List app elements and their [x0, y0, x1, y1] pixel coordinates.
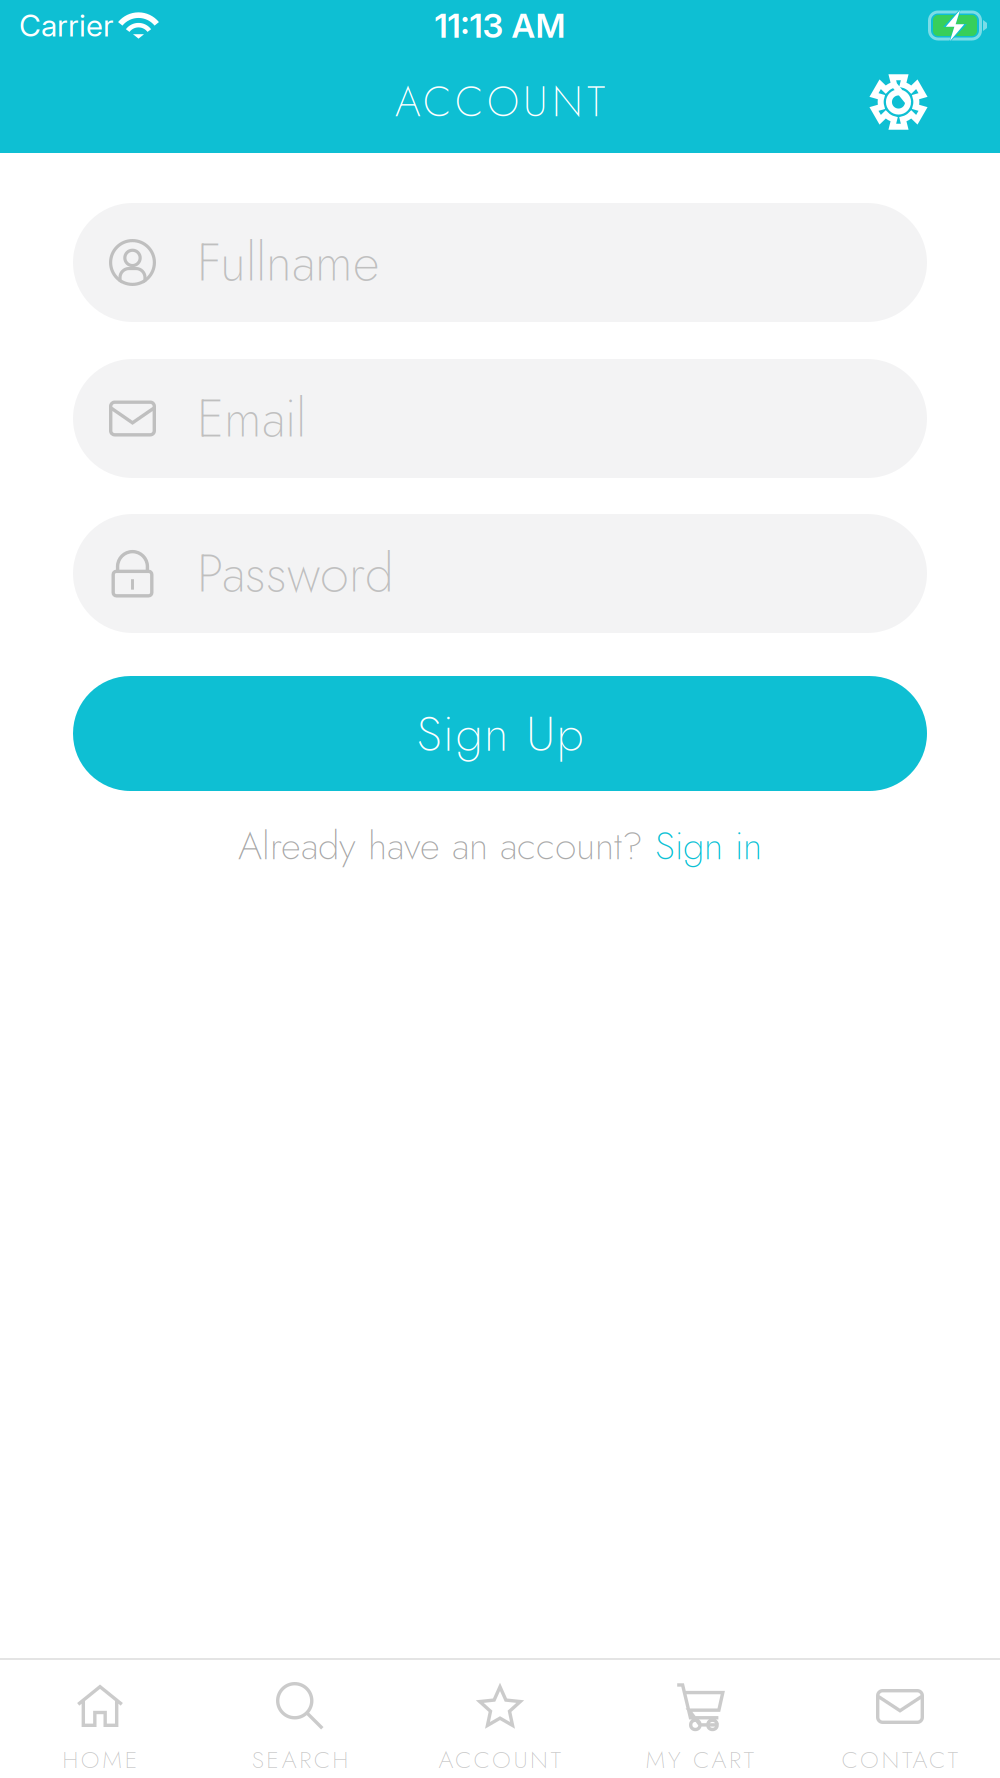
- staticText: Email: [197, 381, 306, 456]
- button[interactable]: CONTACT: [800, 1660, 1000, 1778]
- staticText: Fullname: [197, 225, 379, 300]
- button[interactable]: MY CART: [600, 1660, 800, 1778]
- button[interactable]: HOME: [0, 1660, 200, 1778]
- staticText: Carrier: [19, 7, 114, 44]
- button[interactable]: Email: [73, 359, 927, 478]
- staticText: 11:13 AM: [434, 5, 565, 46]
- button[interactable]: Settings: [848, 57, 1000, 146]
- staticText: HOME: [62, 1742, 138, 1777]
- staticText: ACCOUNT: [438, 1742, 561, 1777]
- staticText: ACCOUNT: [395, 72, 605, 132]
- button[interactable]: SEARCH: [200, 1660, 400, 1778]
- staticText: SEARCH: [252, 1742, 348, 1777]
- button[interactable]: Sign Up: [73, 676, 927, 791]
- staticText: Already have an account?: [238, 818, 655, 874]
- button[interactable]: Password: [73, 514, 927, 633]
- button[interactable]: ACCOUNT: [400, 1660, 600, 1778]
- staticText: Sign Up: [416, 698, 583, 769]
- staticText: Sign in: [655, 818, 762, 874]
- staticText: Password: [197, 536, 394, 611]
- button[interactable]: Fullname: [73, 203, 927, 322]
- staticText: MY CART: [645, 1742, 754, 1777]
- button[interactable]: Sign in: [655, 818, 762, 874]
- staticText: CONTACT: [841, 1742, 958, 1777]
